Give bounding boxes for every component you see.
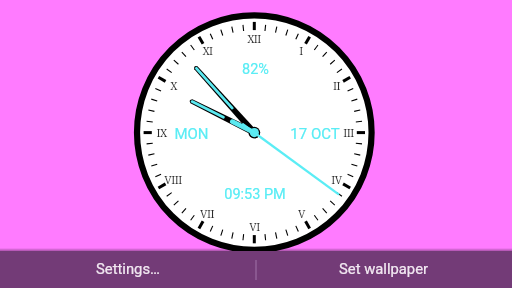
staticText: Settings… <box>96 260 160 277</box>
staticText: VII <box>200 206 214 221</box>
staticText: VIII <box>164 172 182 187</box>
staticText: XI <box>202 43 213 58</box>
staticText: IX <box>156 125 167 140</box>
staticText: V <box>298 206 305 221</box>
button[interactable]: Settings… <box>0 251 256 288</box>
staticText: I <box>299 43 303 58</box>
staticText: 17 OCT <box>290 125 340 143</box>
staticText: 09:53 PM <box>224 186 286 203</box>
staticText: XII <box>247 31 261 46</box>
staticText: MON <box>174 125 209 143</box>
staticText: Set wallpaper <box>339 260 429 277</box>
staticText: 82% <box>242 61 269 78</box>
staticText: VI <box>249 219 260 234</box>
staticText: IV <box>331 172 342 187</box>
staticText: III <box>343 125 354 140</box>
staticText: II <box>333 78 340 93</box>
staticText: X <box>170 78 177 93</box>
button[interactable]: Set wallpaper <box>256 251 512 288</box>
